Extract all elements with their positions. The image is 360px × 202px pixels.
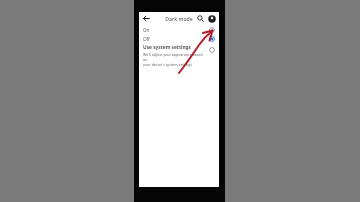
button[interactable]: Off (139, 34, 219, 43)
button[interactable]: Search (195, 13, 206, 24)
staticText: We'll adjust your appearance based on yo… (143, 52, 206, 67)
staticText: Off (143, 36, 208, 42)
staticText: Dark mode (165, 15, 193, 22)
button[interactable]: Use system settings (139, 43, 219, 69)
button[interactable]: Back (141, 13, 152, 24)
button[interactable]: On (139, 25, 219, 34)
staticText: On (143, 27, 208, 33)
staticText: Use system settings (143, 44, 191, 51)
button[interactable]: Account (206, 13, 217, 24)
